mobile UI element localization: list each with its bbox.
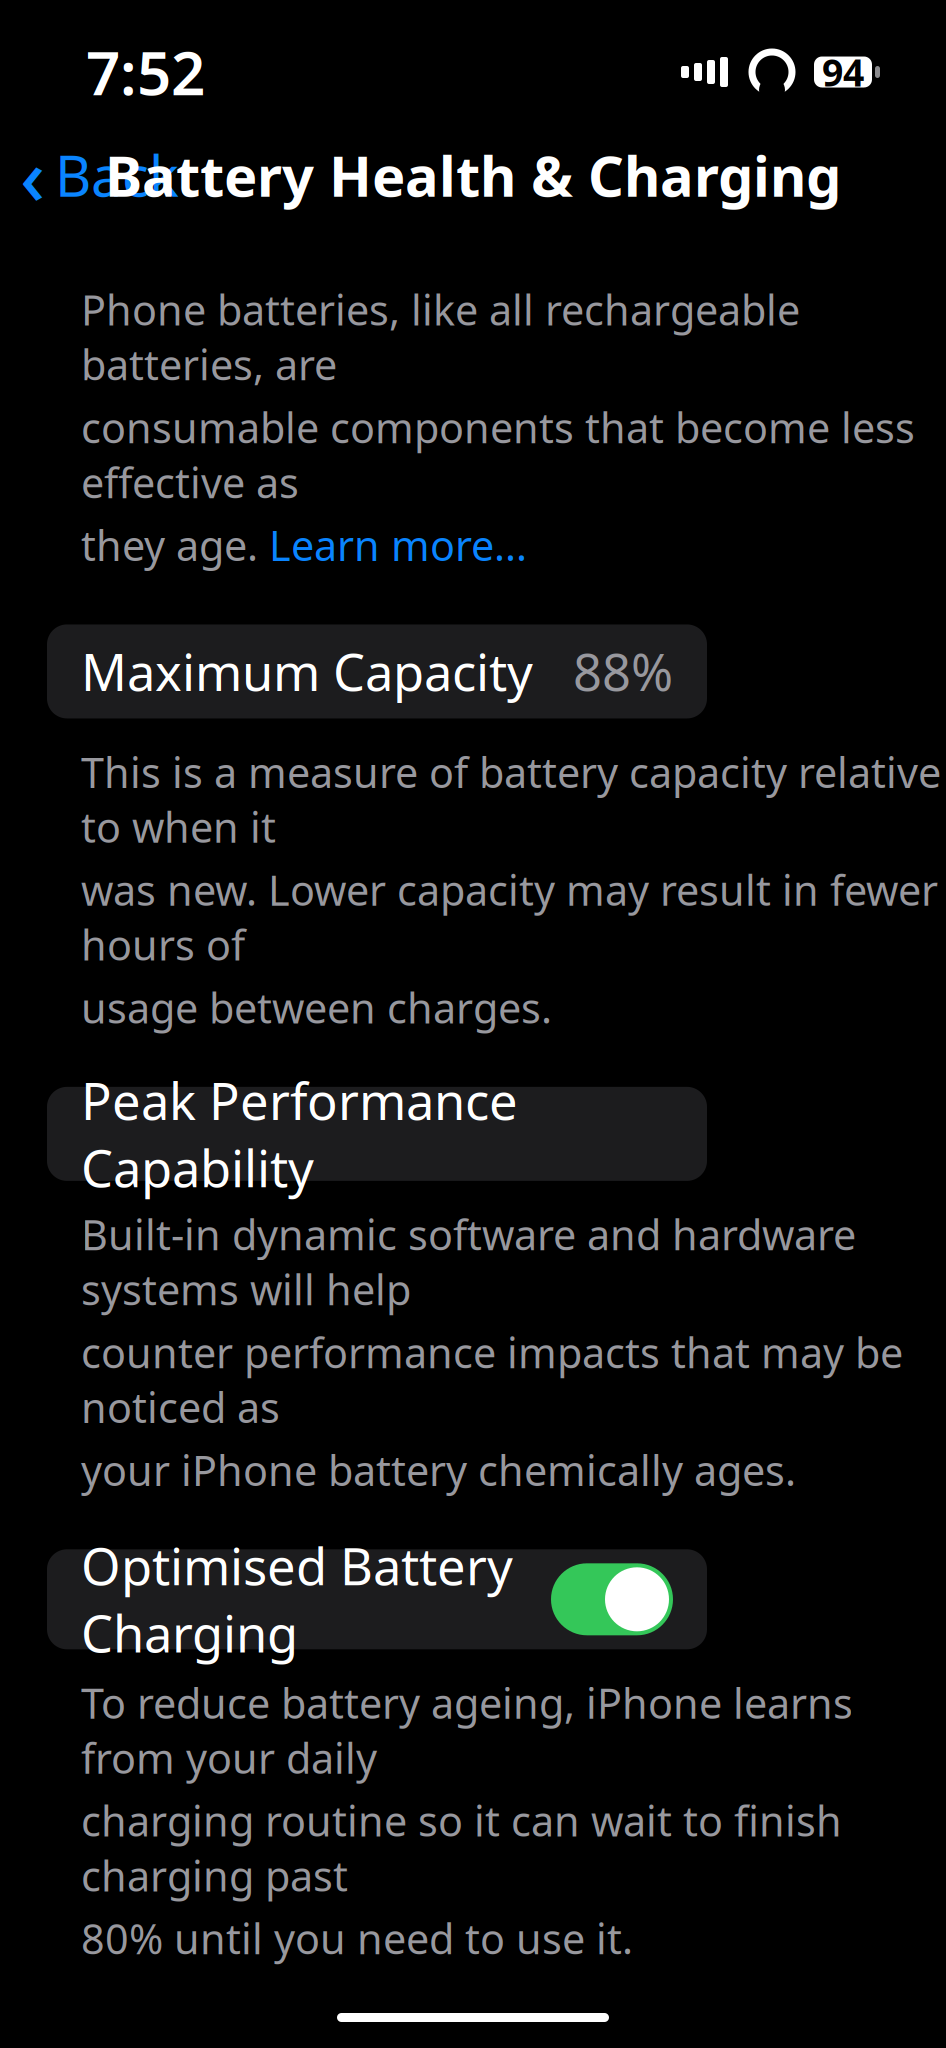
staticText: This is a measure of battery capacity re… bbox=[81, 744, 941, 854]
staticText: Optimised Battery Charging bbox=[81, 1532, 513, 1667]
staticText: Phone batteries, like all rechargeable b… bbox=[81, 282, 800, 392]
staticText: they age. bbox=[81, 518, 269, 572]
button[interactable]: Optimised Battery Charging bbox=[47, 1549, 707, 1649]
staticText: 94 bbox=[822, 47, 864, 97]
button[interactable]: Peak Performance Capability bbox=[47, 1087, 707, 1181]
staticText: Back bbox=[55, 138, 179, 212]
staticText: 7:52 bbox=[86, 32, 205, 112]
staticText: Maximum Capacity bbox=[81, 638, 533, 705]
button[interactable]: Learn more... bbox=[269, 518, 527, 572]
staticText: was new. Lower capacity may result in fe… bbox=[81, 862, 938, 972]
staticText: ‹ bbox=[20, 124, 45, 226]
staticText: consumable components that become less e… bbox=[81, 400, 915, 510]
staticText: charging routine so it can wait to finis… bbox=[81, 1793, 842, 1903]
staticText: counter performance impacts that may be … bbox=[81, 1325, 903, 1434]
staticText: 88% bbox=[573, 638, 673, 705]
staticText: Peak Performance Capability bbox=[81, 1067, 518, 1201]
staticText: To reduce battery ageing, iPhone learns … bbox=[81, 1675, 853, 1785]
staticText: your iPhone battery chemically ages. bbox=[81, 1442, 796, 1497]
staticText: Battery Health & Charging bbox=[105, 138, 841, 212]
staticText: Built-in dynamic software and hardware s… bbox=[81, 1207, 856, 1317]
staticText: 80% until you need to use it. bbox=[81, 1911, 633, 1966]
staticText: usage between charges. bbox=[81, 980, 552, 1035]
staticText: Learn more... bbox=[269, 518, 527, 572]
button[interactable]: Maximum Capacity bbox=[47, 624, 707, 718]
button[interactable]: ‹ bbox=[0, 116, 179, 234]
